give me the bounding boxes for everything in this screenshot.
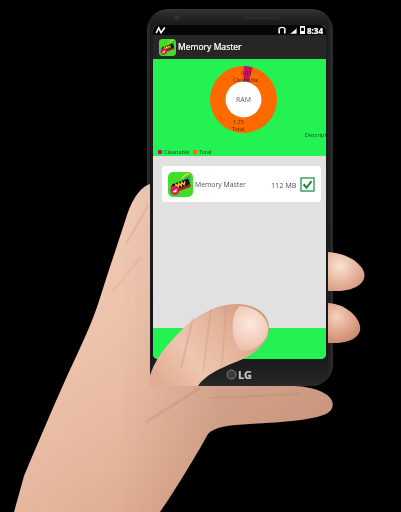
button[interactable]: Memory Master xyxy=(153,35,326,59)
staticText: LG xyxy=(238,367,252,382)
staticText: Memory Master xyxy=(195,180,246,189)
staticText: Memory Master xyxy=(178,41,242,53)
button[interactable]: Select Memory Master xyxy=(301,178,314,191)
staticText: Description xyxy=(305,131,326,138)
staticText: 0.11 xyxy=(241,69,252,76)
staticText: RAM xyxy=(236,95,252,105)
staticText: Cleanable xyxy=(164,148,190,155)
staticText: 1.75 xyxy=(233,118,244,125)
button[interactable]: Memory Master xyxy=(162,166,321,202)
staticText: Total xyxy=(199,148,212,155)
staticText: Total xyxy=(232,125,245,132)
staticText: 8:34 xyxy=(307,25,323,35)
staticText: 112 MB xyxy=(271,180,297,190)
staticText: Cleanable xyxy=(233,76,259,83)
